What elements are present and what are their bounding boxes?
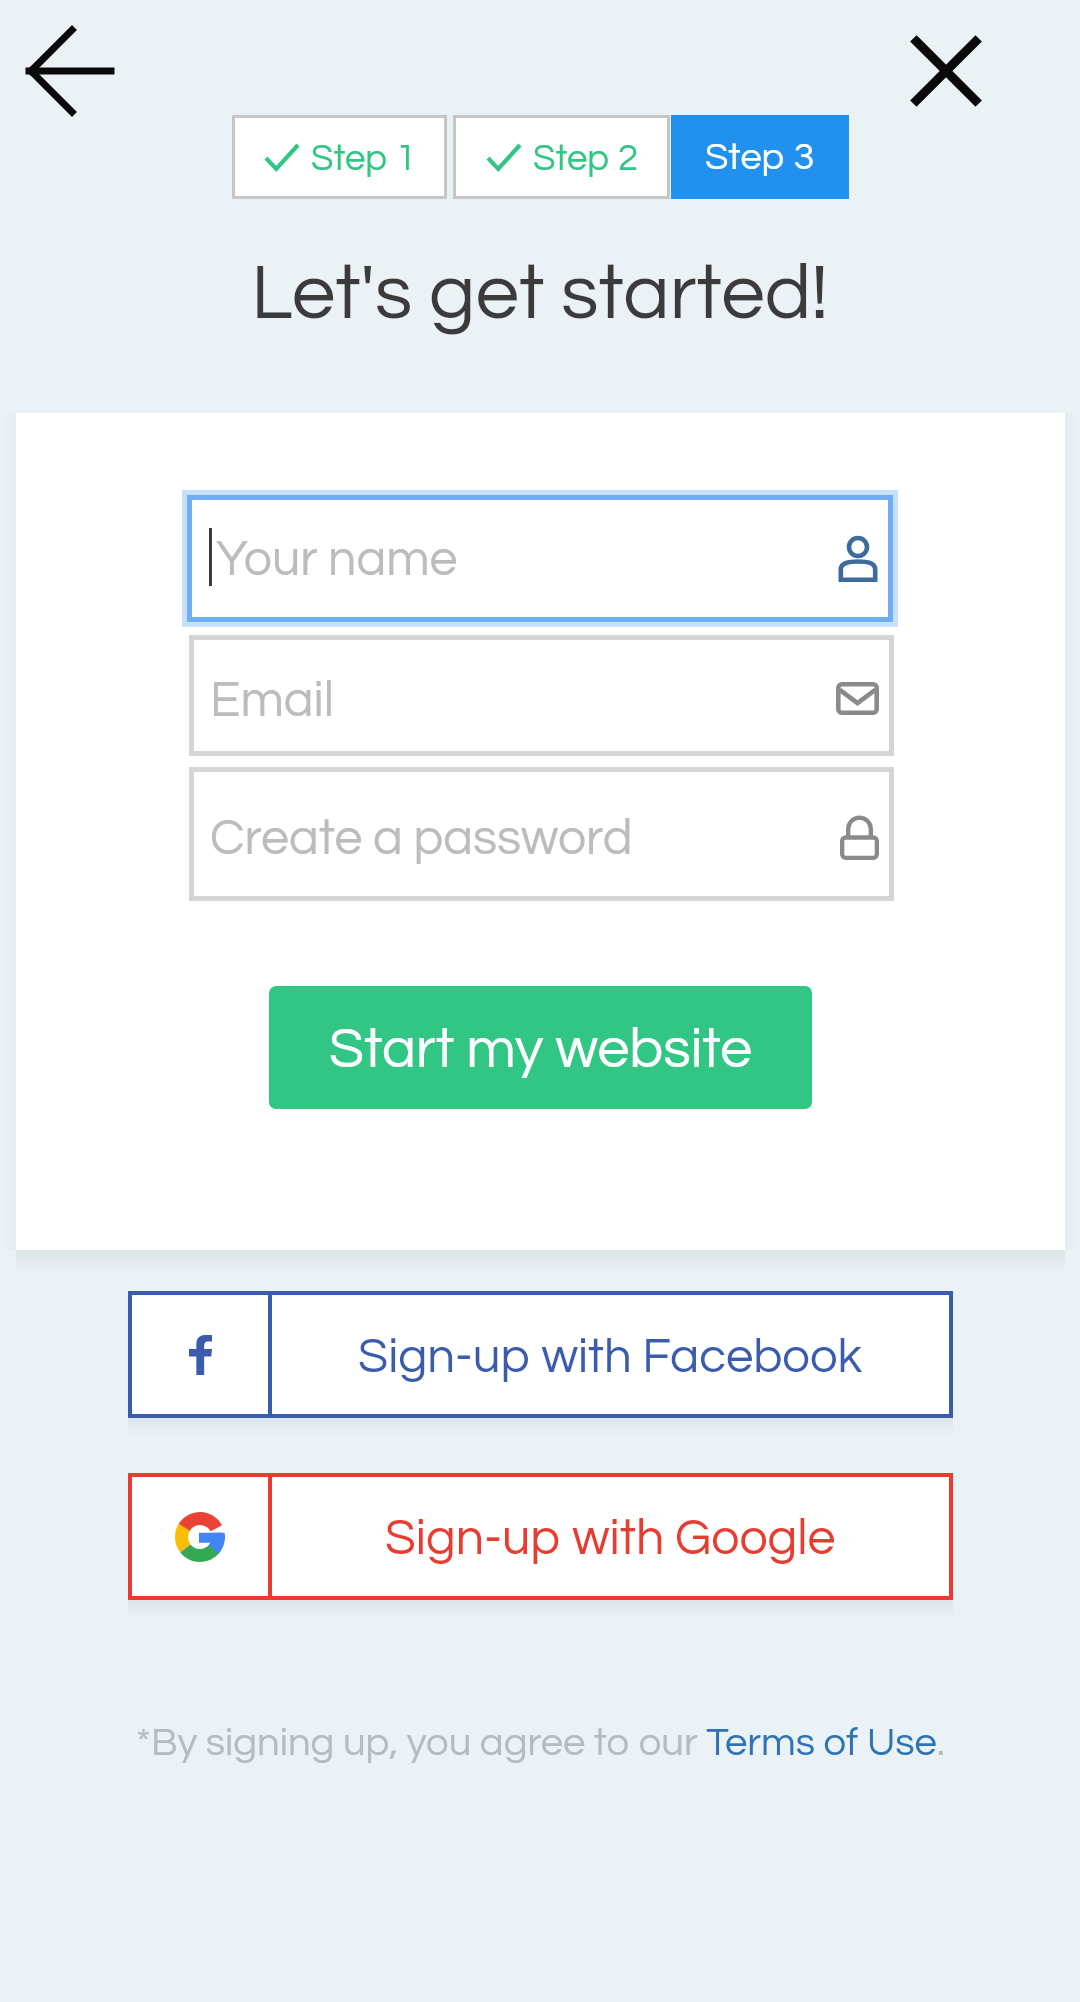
button[interactable]: Back — [8, 19, 112, 123]
staticText: Let's get started! — [251, 254, 829, 334]
button[interactable]: Step 1 — [235, 118, 444, 196]
staticText: Your name — [216, 534, 458, 586]
button[interactable]: Step 2 — [456, 118, 667, 196]
button[interactable]: Close — [894, 19, 998, 123]
staticText: Create a password — [210, 813, 633, 865]
button[interactable]: Sign-up with Facebook — [132, 1295, 949, 1414]
staticText: Sign-up with Facebook — [358, 1332, 863, 1382]
button[interactable]: Email — [194, 640, 889, 751]
staticText: Step 1 — [311, 140, 416, 178]
staticText: Start my website — [329, 1020, 753, 1079]
button[interactable]: Your name — [182, 490, 898, 627]
button[interactable]: Start my website — [269, 986, 812, 1109]
button[interactable]: Step 3 — [671, 115, 849, 199]
button[interactable]: Sign-up with Google — [132, 1477, 949, 1596]
button[interactable]: Create a password — [194, 772, 889, 896]
staticText: Step 2 — [533, 140, 638, 178]
staticText: Email — [210, 675, 335, 727]
staticText: Sign-up with Google — [385, 1513, 836, 1565]
button[interactable]: *By signing up, you agree to our Terms o… — [136, 1722, 945, 1763]
staticText: Step 3 — [705, 138, 815, 177]
